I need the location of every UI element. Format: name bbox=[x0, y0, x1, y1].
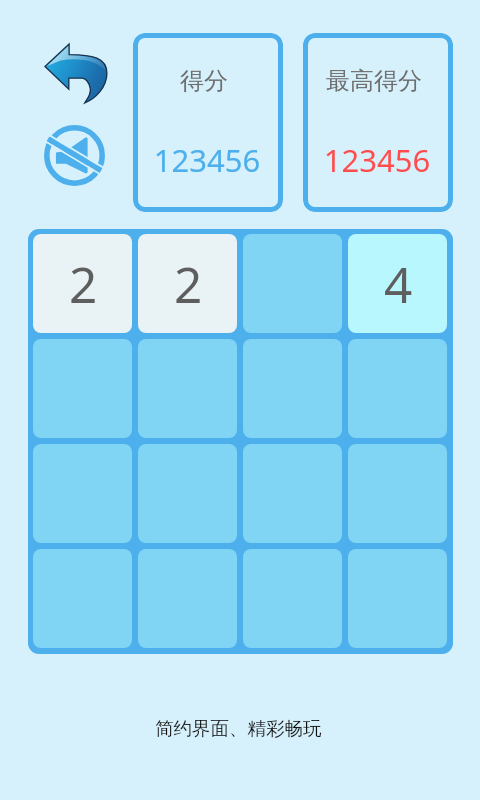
button[interactable]: 得分 bbox=[133, 33, 283, 212]
staticText: 123456 bbox=[133, 139, 282, 181]
button[interactable]: Mute bbox=[44, 125, 105, 186]
staticText: 最高得分 bbox=[303, 66, 449, 96]
staticText: 2 bbox=[174, 250, 203, 317]
staticText: 4 bbox=[384, 250, 413, 317]
staticText: 2 bbox=[69, 250, 98, 317]
staticText: 得分 bbox=[133, 66, 279, 96]
staticText: 123456 bbox=[303, 139, 452, 181]
button[interactable]: Undo bbox=[45, 43, 107, 105]
button[interactable]: 最高得分 bbox=[303, 33, 453, 212]
staticText: 简约界面、精彩畅玩 bbox=[155, 717, 322, 740]
